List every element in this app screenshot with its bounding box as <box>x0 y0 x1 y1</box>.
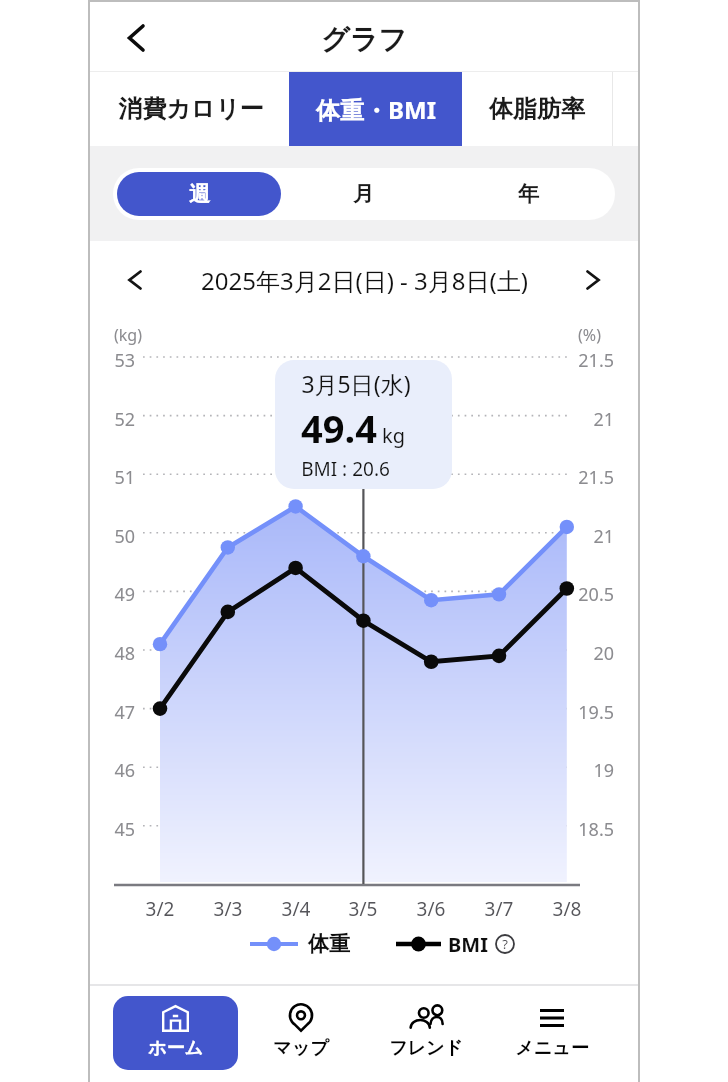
button[interactable]: Next week <box>573 260 613 300</box>
staticText: 46 <box>103 758 135 783</box>
button[interactable]: Previous week <box>115 260 155 300</box>
staticText: 2025年3月2日(日) - 3月8日(土) <box>201 264 528 297</box>
staticText: BMI <box>448 931 488 958</box>
staticText: 53 <box>103 348 135 373</box>
staticText: 51 <box>103 465 135 490</box>
staticText: 3/7 <box>471 896 527 922</box>
staticText: 49 <box>103 582 135 607</box>
staticText: 19 <box>574 758 614 783</box>
staticText: 18.5 <box>574 817 614 842</box>
staticText: 体重・BMI <box>316 93 436 126</box>
button[interactable]: 体重・BMI <box>289 72 462 146</box>
staticText: 消費カロリー <box>118 94 264 124</box>
button[interactable]: 月 <box>281 172 446 216</box>
staticText: 45 <box>103 817 135 842</box>
staticText: 21 <box>574 524 614 549</box>
button[interactable]: 年 <box>446 172 611 216</box>
staticText: 体脂肪率 <box>489 94 585 124</box>
button[interactable]: Back <box>114 16 158 60</box>
staticText: 3/4 <box>268 896 324 922</box>
staticText: 体重 <box>308 931 350 957</box>
staticText: (kg) <box>114 324 142 346</box>
staticText: 月 <box>353 181 374 207</box>
staticText: 50 <box>103 524 135 549</box>
staticText: 21.5 <box>574 348 614 373</box>
staticText: (%) <box>578 324 601 346</box>
staticText: 48 <box>103 641 135 666</box>
staticText: 21 <box>574 407 614 432</box>
button[interactable]: 消費カロリー <box>93 72 289 146</box>
staticText: 21.5 <box>574 465 614 490</box>
staticText: 20 <box>574 641 614 666</box>
button[interactable]: フレンド <box>363 996 489 1070</box>
button[interactable]: マップ <box>238 996 363 1070</box>
staticText: 3/8 <box>539 896 595 922</box>
staticText: 3/3 <box>200 896 256 922</box>
staticText: 20.5 <box>574 582 614 607</box>
button[interactable]: BMI help <box>495 934 515 954</box>
button[interactable]: メニュー <box>489 996 615 1070</box>
staticText: 3/2 <box>132 896 188 922</box>
staticText: 19.5 <box>574 700 614 725</box>
button[interactable]: 体脂肪率 <box>462 72 612 146</box>
staticText: 3/5 <box>335 896 391 922</box>
staticText: 49.4 <box>301 402 377 454</box>
staticText: フレンド <box>389 1037 463 1060</box>
button[interactable]: ホーム <box>113 996 238 1070</box>
staticText: グラフ <box>321 22 407 57</box>
staticText: ホーム <box>148 1037 203 1060</box>
staticText: マップ <box>273 1037 329 1060</box>
staticText: BMI : 20.6 <box>301 456 390 482</box>
staticText: 年 <box>518 181 539 207</box>
staticText: 週 <box>189 181 210 207</box>
staticText: メニュー <box>515 1037 589 1060</box>
staticText: 3月5日(水) <box>301 368 411 399</box>
button[interactable]: 週 <box>117 172 281 216</box>
staticText: ? <box>502 935 508 953</box>
staticText: 47 <box>103 700 135 725</box>
staticText: kg <box>382 422 405 449</box>
staticText: 3/6 <box>403 896 459 922</box>
staticText: 52 <box>103 407 135 432</box>
